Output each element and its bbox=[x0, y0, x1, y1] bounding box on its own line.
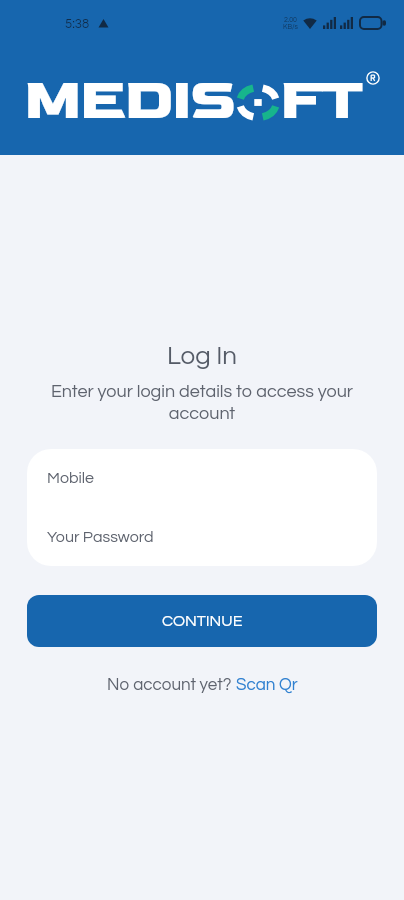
staticText: CONTINUE bbox=[162, 613, 243, 629]
staticText: No account yet? bbox=[107, 676, 236, 694]
button[interactable]: Your Password bbox=[27, 507, 377, 566]
staticText: MEDIS bbox=[23, 64, 235, 136]
staticText: 5:38 bbox=[65, 17, 90, 30]
staticText: Log In bbox=[0, 343, 404, 370]
button[interactable]: Mobile bbox=[27, 449, 377, 507]
button[interactable]: Scan Qr bbox=[236, 676, 298, 694]
button[interactable]: CONTINUE bbox=[27, 595, 377, 647]
staticText: Enter your login details to access your … bbox=[48, 382, 356, 422]
staticText: KB/s bbox=[283, 23, 298, 30]
staticText: Mobile bbox=[47, 470, 94, 486]
staticText: Your Password bbox=[47, 529, 154, 545]
staticText: 2.00 bbox=[284, 16, 297, 23]
staticText: FT bbox=[279, 64, 361, 136]
